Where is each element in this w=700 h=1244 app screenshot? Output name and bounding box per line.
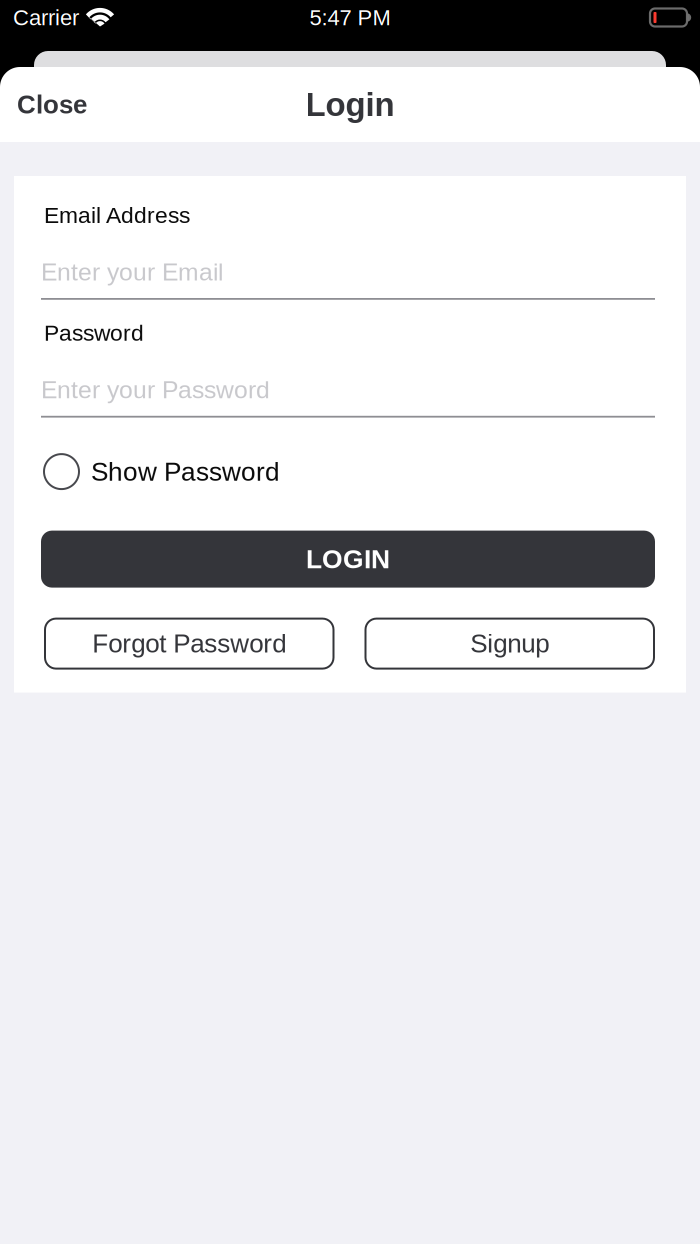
staticText: Show Password [91,457,280,486]
staticText: Forgot Password [92,629,286,658]
staticText: Signup [470,629,549,658]
button[interactable]: Forgot Password [45,619,333,669]
staticText: Login [305,86,394,123]
button[interactable]: Close [0,78,104,130]
staticText: Email Address [44,202,190,228]
staticText: Password [44,320,144,346]
button[interactable]: Show Password [41,452,655,492]
staticText: Enter your Email [41,258,223,286]
staticText: Close [17,90,87,119]
button[interactable]: LOGIN [41,531,655,588]
staticText: 5:47 PM [309,5,390,30]
button[interactable]: Signup [365,619,654,669]
staticText: Enter your Password [41,376,270,404]
staticText: Carrier [13,5,79,30]
staticText: LOGIN [306,544,390,574]
